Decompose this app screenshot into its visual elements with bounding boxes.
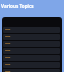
- button[interactable]: Topic: [3, 48, 60, 54]
- staticText: Topic: [5, 49, 11, 52]
- button[interactable]: Topic: [3, 41, 60, 47]
- staticText: Topic: [5, 70, 11, 72]
- staticText: Topic: [5, 42, 11, 45]
- button[interactable]: Topic: [3, 27, 60, 33]
- button[interactable]: Topic: [3, 34, 60, 40]
- staticText: Topic: [5, 56, 11, 59]
- staticText: Various Topics: [1, 3, 34, 9]
- staticText: Topic: [5, 63, 11, 66]
- button[interactable]: Topic: [3, 55, 60, 61]
- staticText: Topic: [5, 35, 11, 38]
- button[interactable]: Topic: [3, 62, 60, 68]
- button[interactable]: Topic: [3, 69, 60, 72]
- staticText: Topic: [5, 28, 11, 31]
